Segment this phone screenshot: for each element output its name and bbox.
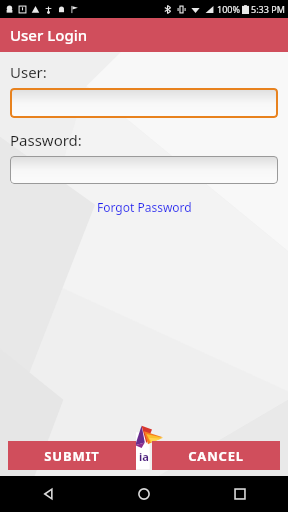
button[interactable]: Back [0,476,96,512]
staticText: CANCEL [188,447,244,465]
staticText: User: [10,62,47,82]
button[interactable]: CANCEL [152,441,280,470]
staticText: ia [139,449,149,464]
button[interactable] [10,156,278,184]
staticText: SUBMIT [44,447,100,465]
staticText: Password: [10,130,82,150]
staticText: Forgot Password [97,199,192,215]
button[interactable]: Recent apps [192,476,288,512]
staticText: 5:33 PM [251,3,285,15]
staticText: 100% [217,3,240,15]
button[interactable]: Forgot Password [91,196,198,218]
staticText: User Login [10,25,88,45]
button[interactable]: Home [96,476,192,512]
button[interactable] [10,88,278,118]
button[interactable]: SUBMIT [8,441,136,470]
